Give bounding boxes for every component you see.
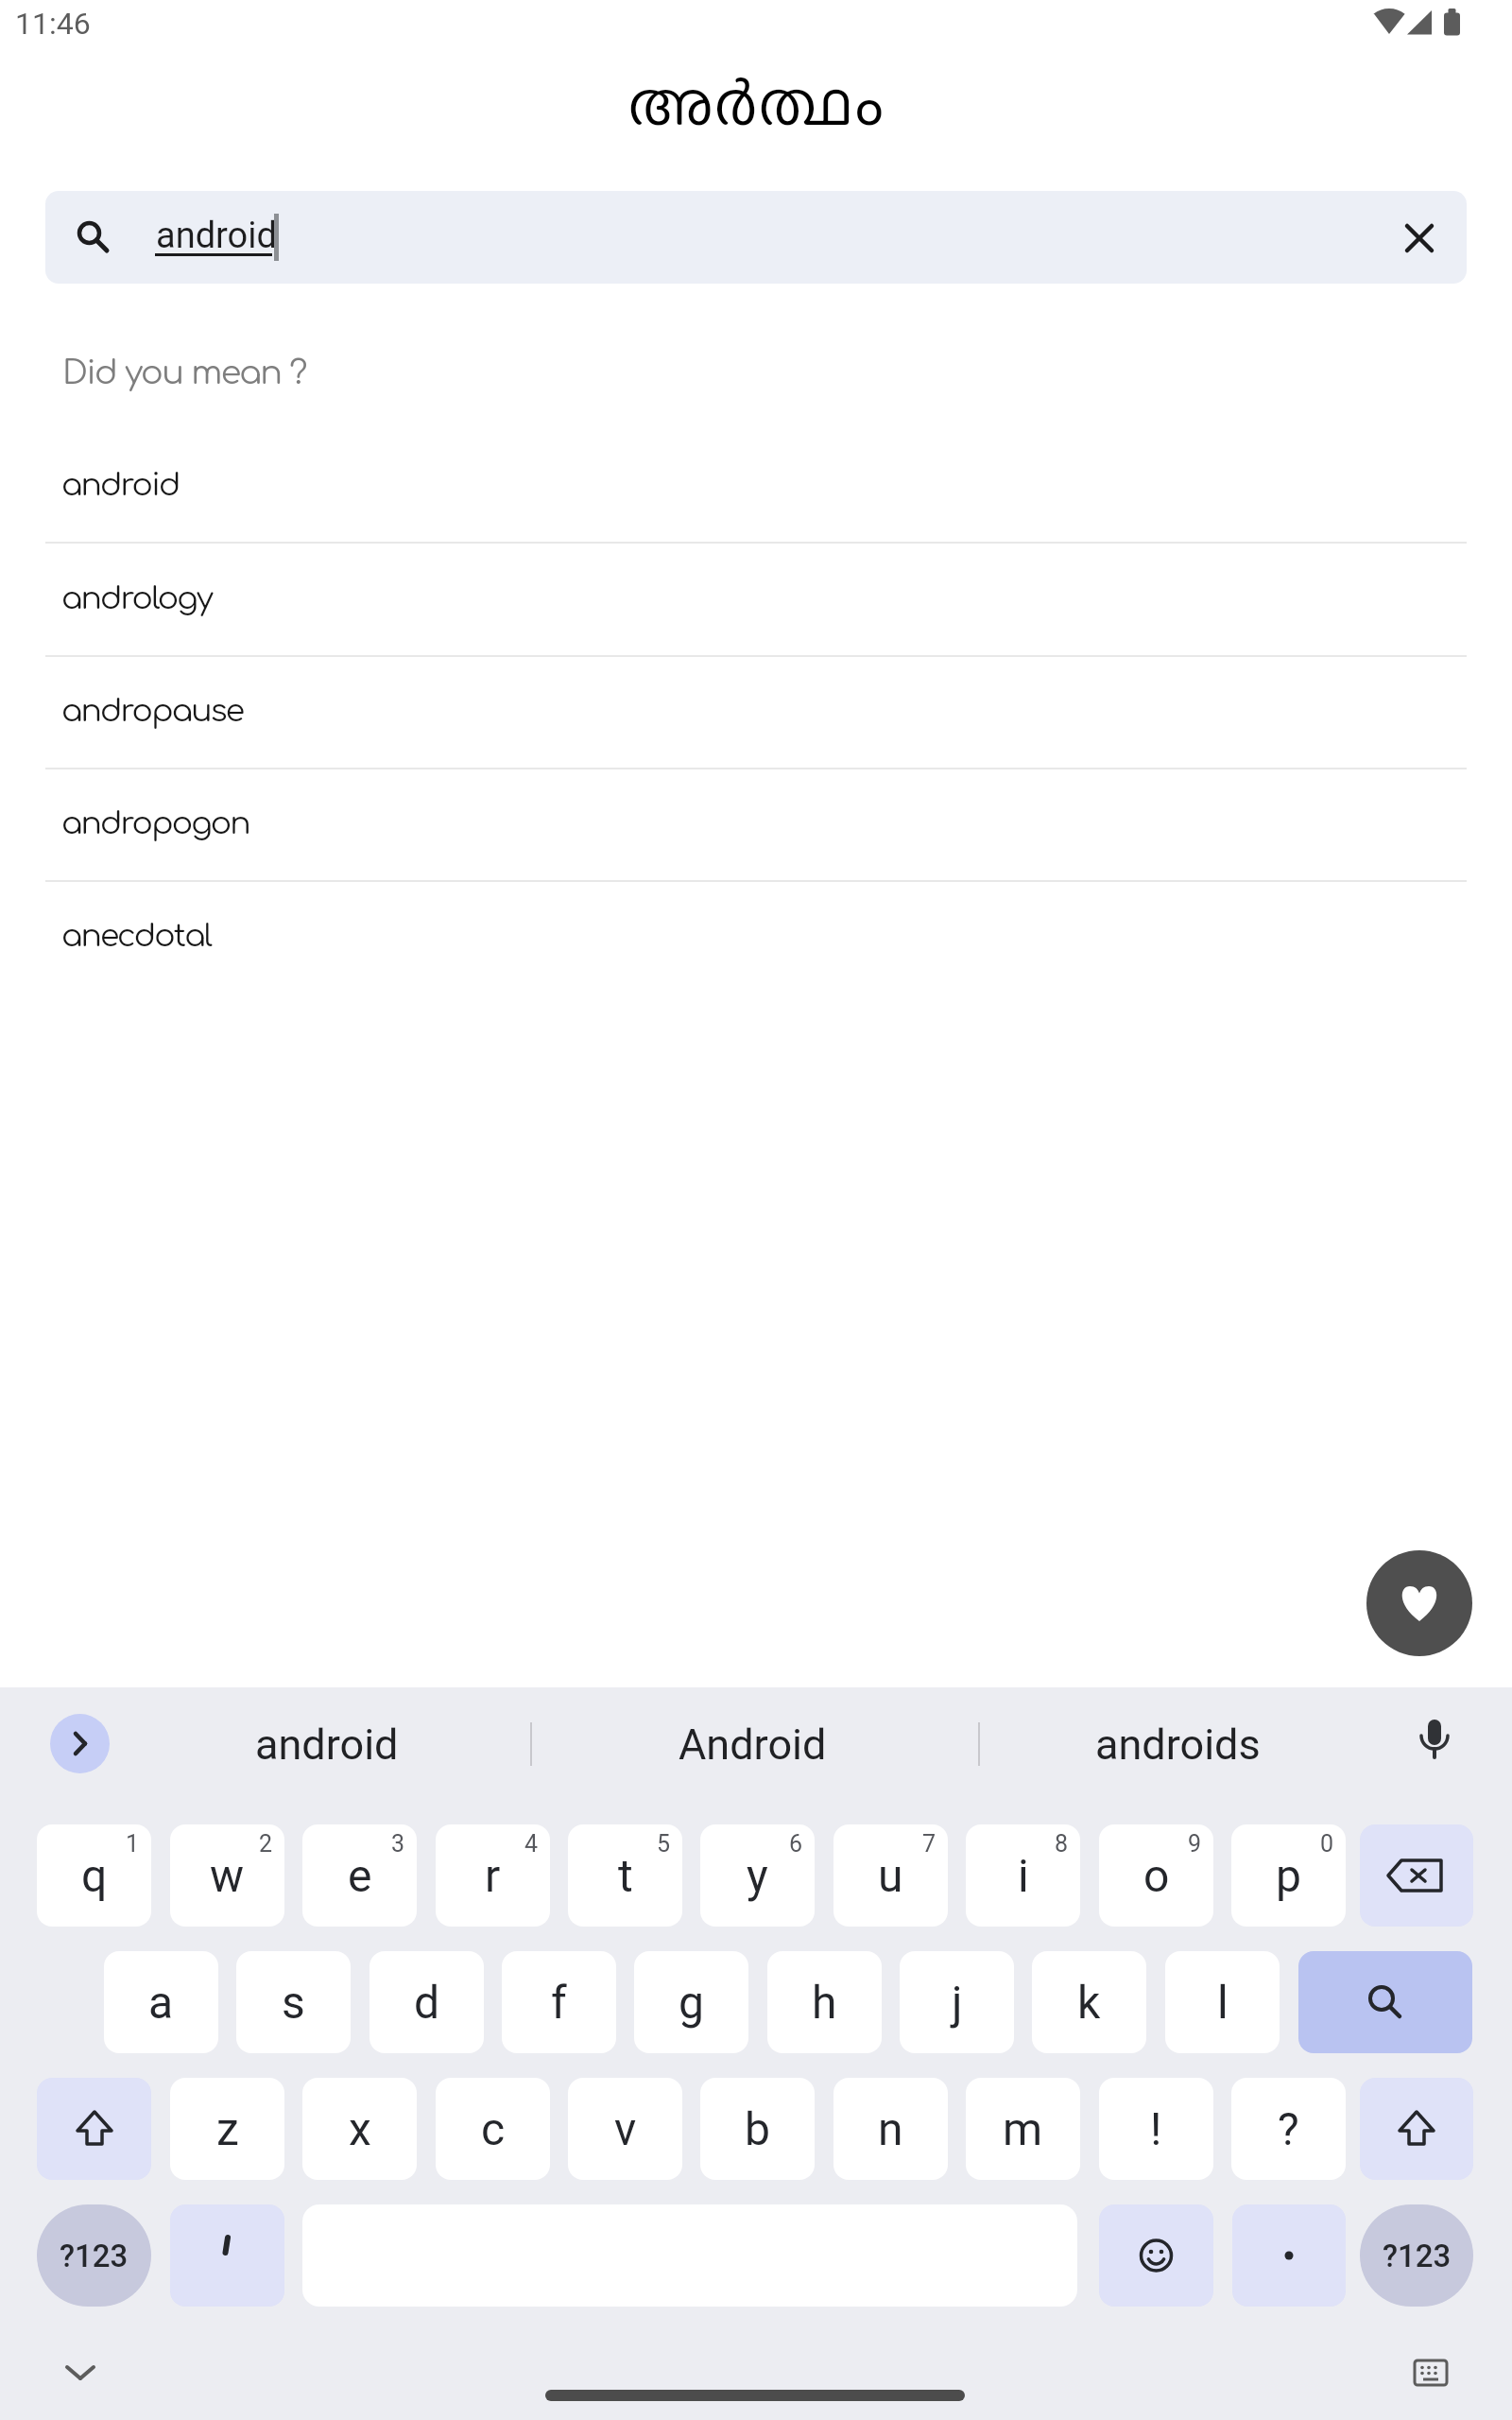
button[interactable] <box>1232 2204 1346 2307</box>
button[interactable]: c <box>436 2078 550 2180</box>
staticText: അർത്ഥം <box>627 58 885 143</box>
staticText: Did you mean ? <box>62 354 306 391</box>
button[interactable]: andrology <box>0 542 1512 655</box>
staticText: 7 <box>922 1830 936 1858</box>
button[interactable]: v <box>568 2078 682 2180</box>
staticText: Android <box>679 1720 827 1770</box>
button[interactable]: m <box>966 2078 1080 2180</box>
staticText: j <box>952 1976 963 2029</box>
button[interactable]: d <box>369 1951 484 2053</box>
staticText: y <box>747 1849 768 1902</box>
button[interactable] <box>1403 222 1435 254</box>
button[interactable]: s <box>236 1951 351 2053</box>
staticText: ! <box>1150 2102 1162 2155</box>
button[interactable] <box>1412 1715 1457 1772</box>
staticText: 8 <box>1055 1830 1069 1858</box>
button[interactable]: z <box>170 2078 284 2180</box>
staticText: 1 <box>126 1830 140 1858</box>
button[interactable] <box>1366 1550 1472 1656</box>
button[interactable]: w <box>170 1824 284 1927</box>
button[interactable] <box>1298 1951 1472 2053</box>
staticText: 4 <box>524 1830 539 1858</box>
button[interactable]: android <box>0 428 1512 542</box>
button[interactable]: andropogon <box>0 768 1512 880</box>
button[interactable] <box>1099 2204 1213 2307</box>
button[interactable]: k <box>1032 1951 1146 2053</box>
staticText: androids <box>1095 1720 1261 1770</box>
button[interactable] <box>50 1714 110 1773</box>
staticText: 6 <box>789 1830 803 1858</box>
staticText: p <box>1276 1849 1301 1902</box>
button[interactable]: u <box>833 1824 948 1927</box>
staticText: v <box>614 2102 637 2155</box>
button[interactable]: l <box>1165 1951 1280 2053</box>
staticText: g <box>679 1976 704 2029</box>
staticText: 5 <box>657 1830 671 1858</box>
button[interactable]: e <box>302 1824 417 1927</box>
staticText: a <box>148 1976 174 2029</box>
button[interactable]: ! <box>1099 2078 1213 2180</box>
staticText: i <box>1018 1849 1029 1902</box>
staticText: android <box>255 1720 399 1770</box>
button[interactable]: y <box>700 1824 815 1927</box>
button[interactable]: Android <box>582 1714 922 1774</box>
button[interactable]: ? <box>1231 2078 1346 2180</box>
staticText: o <box>1143 1849 1170 1902</box>
staticText: android <box>61 468 180 503</box>
staticText: 2 <box>259 1830 273 1858</box>
staticText: ?123 <box>1383 2238 1452 2274</box>
staticText: k <box>1077 1976 1101 2029</box>
staticText: d <box>414 1976 440 2029</box>
button[interactable]: androids <box>1007 1714 1348 1774</box>
button[interactable] <box>37 2078 151 2180</box>
staticText: z <box>216 2102 239 2155</box>
staticText: l <box>1217 1976 1228 2029</box>
button[interactable]: i <box>966 1824 1080 1927</box>
staticText: c <box>481 2102 506 2155</box>
button[interactable]: f <box>502 1951 616 2053</box>
staticText: anecdotal <box>61 919 212 954</box>
staticText: h <box>812 1976 837 2029</box>
button[interactable]: ?123 <box>1360 2204 1473 2307</box>
staticText: e <box>348 1849 372 1902</box>
button[interactable]: b <box>700 2078 815 2180</box>
staticText: t <box>618 1849 633 1902</box>
staticText: w <box>210 1849 245 1902</box>
button[interactable]: r <box>436 1824 550 1927</box>
staticText: ? <box>1278 2102 1299 2155</box>
button[interactable] <box>1360 2078 1473 2180</box>
staticText: 0 <box>1320 1830 1334 1858</box>
staticText: n <box>878 2102 903 2155</box>
staticText: f <box>551 1976 567 2029</box>
button[interactable]: ?123 <box>37 2204 151 2307</box>
button[interactable]: j <box>900 1951 1014 2053</box>
button[interactable]: anecdotal <box>0 880 1512 993</box>
button[interactable]: android <box>45 191 1467 284</box>
button[interactable]: h <box>767 1951 882 2053</box>
staticText: b <box>745 2102 770 2155</box>
staticText: 11:46 <box>15 6 91 40</box>
button[interactable]: andropause <box>0 655 1512 768</box>
button[interactable] <box>170 2204 284 2307</box>
button[interactable] <box>64 2360 96 2387</box>
button[interactable]: n <box>833 2078 948 2180</box>
button[interactable]: a <box>104 1951 218 2053</box>
button[interactable]: x <box>302 2078 417 2180</box>
button[interactable]: android <box>157 1714 497 1774</box>
staticText: andropogon <box>61 806 249 841</box>
button[interactable]: q <box>37 1824 151 1927</box>
staticText: 9 <box>1188 1830 1202 1858</box>
staticText: m <box>1003 2102 1043 2155</box>
button[interactable] <box>1360 1824 1473 1927</box>
staticText: x <box>349 2102 371 2155</box>
staticText: andrology <box>61 581 213 616</box>
button[interactable]: g <box>634 1951 748 2053</box>
button[interactable]: p <box>1231 1824 1346 1927</box>
staticText: r <box>485 1849 501 1902</box>
staticText: ?123 <box>60 2238 129 2274</box>
button[interactable] <box>1413 2359 1449 2386</box>
button[interactable]: t <box>568 1824 682 1927</box>
staticText: 3 <box>391 1830 405 1858</box>
button[interactable]: o <box>1099 1824 1213 1927</box>
